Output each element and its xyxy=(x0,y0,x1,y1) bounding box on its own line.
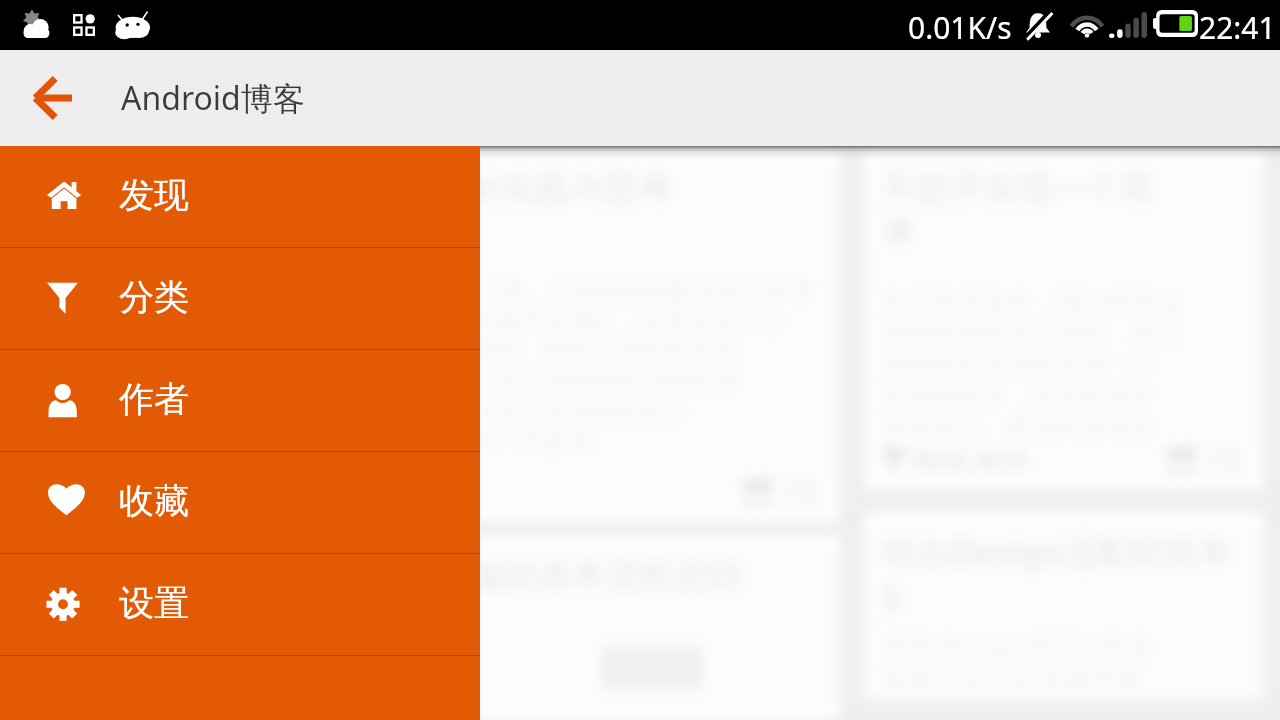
staticText: 第三方库发现之旅：组件化开发的实践与思考 xyxy=(0,167,672,210)
staticText: 使用Android studio分析内存泄漏的基本流程总结 xyxy=(0,551,743,597)
button[interactable]: 设置 xyxy=(0,554,480,656)
staticText: Android博客 xyxy=(121,76,305,120)
button[interactable]: 作者 xyxy=(0,350,480,452)
staticText: 程中遇到的问题和解决方案。希望对大家有所帮助。附带示例代码与完 xyxy=(0,336,736,366)
staticText: 作者 xyxy=(119,377,189,421)
button[interactable]: Back xyxy=(4,50,100,146)
staticText: 发现 xyxy=(119,173,189,217)
staticText: 0.01K/s xyxy=(908,7,1012,48)
staticText: 设置 xyxy=(119,581,189,625)
staticText: 析。如果你正在做类似的技术选型，希望能给你一些参考。 xyxy=(0,426,616,456)
staticText: 整的工程配置说明，供大家参考使用。同时也介绍了路由跳转与模块通 xyxy=(0,366,736,396)
staticText: 收藏 xyxy=(119,479,189,523)
staticText: 的问题。本文介绍了如何将一个已有项目重构为组件化项目，以及在这个过 xyxy=(0,306,784,336)
button[interactable]: 收藏 xyxy=(0,452,480,554)
button[interactable]: 分类 xyxy=(0,248,480,350)
staticText: 帮助。 xyxy=(882,442,957,473)
button[interactable]: 发现 xyxy=(0,146,480,248)
staticText: 信的几种常用实现方式，并对每种方式的优缺点做了简单的对比分 xyxy=(0,396,688,426)
staticText: 开发 xyxy=(0,210,60,253)
staticText: 22:41 xyxy=(1199,7,1276,48)
staticText: 转载,翻译 xyxy=(28,474,139,510)
staticText: 分类 xyxy=(119,275,189,319)
staticText: 在 Android 开发中，组件化架构已经成为主流方案，它能有效地解决单工程带来 xyxy=(0,273,822,306)
